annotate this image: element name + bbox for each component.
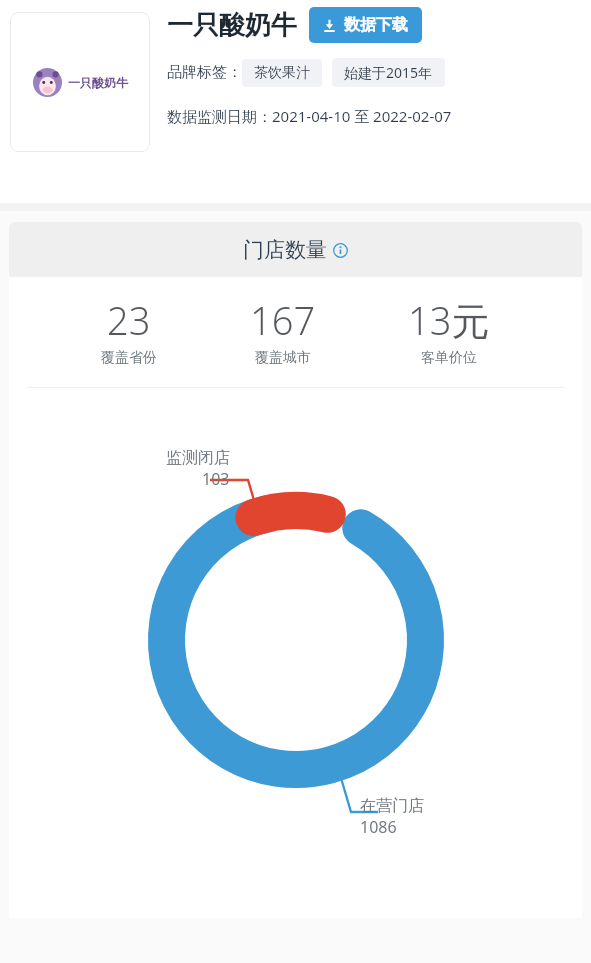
button[interactable]: 茶饮果汁: [242, 59, 322, 87]
staticText: 23: [107, 294, 151, 346]
staticText: 数据监测日期：2021-04-10 至 2022-02-07: [167, 106, 452, 126]
button[interactable]: 说明: [333, 243, 348, 258]
staticText: 一只酸奶牛: [167, 9, 297, 42]
staticText: 13元: [408, 294, 490, 346]
button[interactable]: 始建于2015年: [332, 58, 445, 87]
staticText: 覆盖城市: [255, 349, 311, 367]
staticText: 一只酸奶牛: [68, 75, 128, 90]
staticText: 客单价位: [421, 349, 477, 367]
staticText: 在营门店: [360, 796, 424, 816]
staticText: 103: [202, 468, 230, 490]
staticText: 茶饮果汁: [254, 64, 310, 82]
staticText: 门店数量: [243, 237, 327, 263]
staticText: 始建于2015年: [344, 63, 433, 82]
staticText: 品牌标签：: [167, 63, 242, 82]
staticText: 覆盖省份: [101, 349, 157, 367]
staticText: 数据下载: [344, 15, 408, 35]
button[interactable]: 数据下载: [309, 7, 422, 43]
staticText: 监测闭店: [166, 448, 230, 468]
staticText: 167: [250, 294, 316, 346]
staticText: 1086: [360, 816, 397, 838]
